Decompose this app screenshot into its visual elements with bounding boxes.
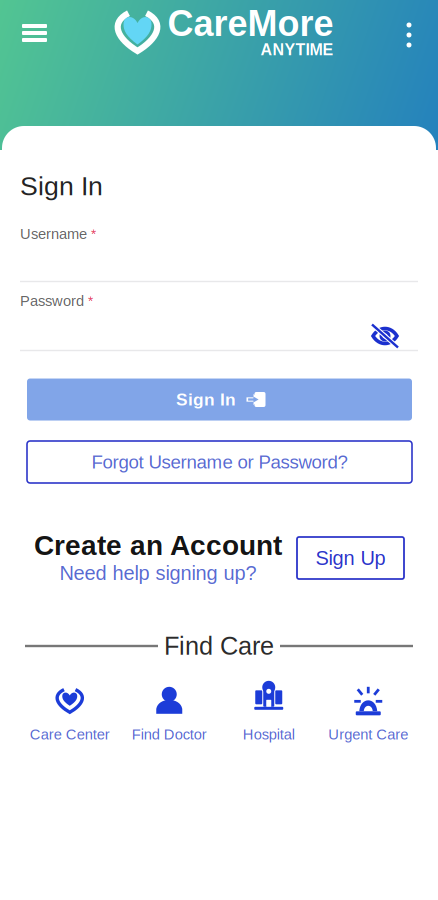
button[interactable]: Care Center <box>20 687 119 743</box>
button[interactable]: Need help signing up? <box>59 562 256 584</box>
button[interactable]: Show password <box>370 324 399 348</box>
button[interactable]: Hospital <box>219 687 318 743</box>
button[interactable]: Urgent Care <box>318 687 418 743</box>
staticText: Need help signing up? <box>59 562 256 584</box>
button[interactable]: Forgot Username or Password? <box>27 441 412 483</box>
staticText: Create an Account <box>34 530 282 561</box>
staticText: Hospital <box>243 726 295 743</box>
staticText: Sign In <box>20 171 103 201</box>
button[interactable]: Menu <box>14 13 54 53</box>
staticText: Forgot Username or Password? <box>91 452 347 472</box>
staticText: CareMore <box>167 3 333 44</box>
button[interactable]: Find Doctor <box>119 687 219 743</box>
staticText: Urgent Care <box>328 726 408 743</box>
staticText: * <box>88 294 93 308</box>
staticText: Find Care <box>164 632 274 660</box>
button[interactable]: Sign Up <box>297 537 404 579</box>
button[interactable]: More options <box>392 15 426 55</box>
staticText: Find Doctor <box>132 726 207 743</box>
staticText: Password <box>20 293 84 309</box>
staticText: Sign In <box>176 390 236 409</box>
staticText: Username <box>20 226 87 242</box>
button[interactable]: Sign In <box>27 378 412 420</box>
staticText: * <box>91 227 96 241</box>
staticText: Care Center <box>30 726 110 743</box>
staticText: ANYTIME <box>260 41 333 59</box>
staticText: Sign Up <box>315 547 385 569</box>
